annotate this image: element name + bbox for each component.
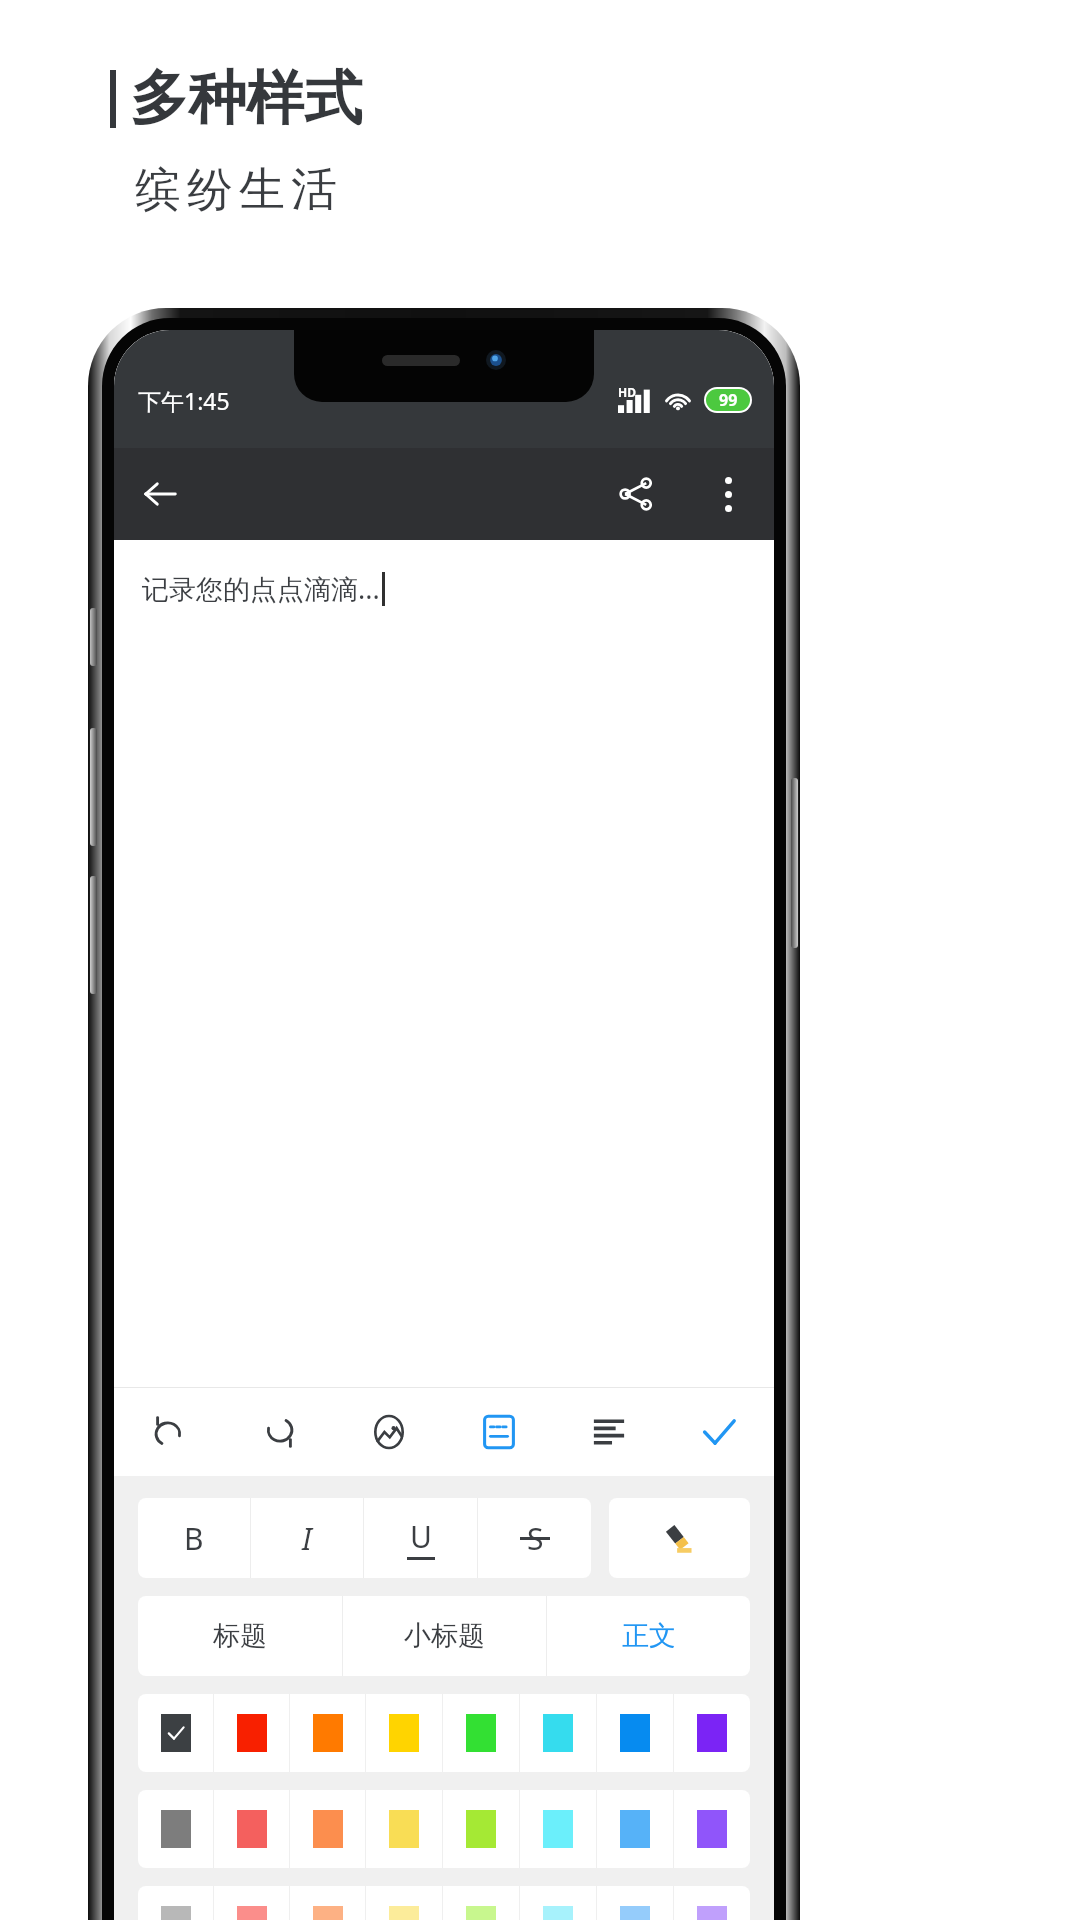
button[interactable]: Color swatch (443, 1694, 519, 1772)
button[interactable]: Back (114, 448, 206, 540)
button[interactable]: Color swatch (214, 1886, 289, 1920)
button[interactable]: Color swatch (290, 1694, 365, 1772)
staticText: 标题 (213, 1619, 267, 1653)
staticText: 多种样式 (130, 62, 362, 135)
button[interactable]: Color swatch (674, 1886, 750, 1920)
staticText: HD (618, 384, 636, 400)
button[interactable]: Redo (224, 1388, 334, 1476)
button[interactable]: 正文 (547, 1596, 750, 1676)
button[interactable]: B (138, 1498, 250, 1578)
staticText: 下午1:45 (138, 385, 230, 416)
button[interactable]: Align (554, 1388, 664, 1476)
button[interactable]: More options (682, 448, 774, 540)
button[interactable]: Insert image (334, 1388, 444, 1476)
button[interactable]: Color swatch (597, 1886, 673, 1920)
button[interactable]: Done (664, 1388, 774, 1476)
button[interactable]: 小标题 (343, 1596, 546, 1676)
button[interactable]: Color swatch (138, 1886, 213, 1920)
button[interactable]: Color swatch (520, 1886, 596, 1920)
staticText: 记录您的点点滴滴... (142, 570, 380, 607)
button[interactable]: Color swatch (290, 1790, 365, 1868)
button[interactable]: Color swatch (674, 1790, 750, 1868)
button[interactable]: 标题 (138, 1596, 342, 1676)
button[interactable]: Color swatch (366, 1694, 442, 1772)
button[interactable]: Color swatch (674, 1694, 750, 1772)
staticText: 缤纷生活 (132, 161, 340, 219)
button[interactable]: U (364, 1498, 477, 1578)
button[interactable]: Color swatch (597, 1694, 673, 1772)
staticText: S (527, 1518, 544, 1559)
button[interactable]: Color swatch (366, 1886, 442, 1920)
staticText: U (410, 1516, 432, 1557)
staticText: 小标题 (404, 1619, 485, 1653)
button[interactable]: Color swatch (138, 1694, 213, 1772)
staticText: B (184, 1518, 204, 1559)
button[interactable]: Color swatch (520, 1694, 596, 1772)
staticText: 99 (719, 389, 738, 411)
button[interactable]: Color swatch (214, 1694, 289, 1772)
button[interactable]: Color swatch (214, 1790, 289, 1868)
button[interactable]: Color swatch (366, 1790, 442, 1868)
button[interactable]: I (251, 1498, 363, 1578)
staticText: I (302, 1518, 312, 1559)
button[interactable]: Color swatch (443, 1886, 519, 1920)
button[interactable]: Text style (444, 1388, 554, 1476)
button[interactable]: Color swatch (290, 1886, 365, 1920)
staticText: 正文 (622, 1619, 676, 1653)
button[interactable]: Highlighter (609, 1498, 750, 1578)
button[interactable]: Color swatch (520, 1790, 596, 1868)
button[interactable]: Share (590, 448, 682, 540)
button[interactable]: Color swatch (443, 1790, 519, 1868)
button[interactable]: Undo (114, 1388, 224, 1476)
button[interactable]: Color swatch (597, 1790, 673, 1868)
button[interactable]: S (478, 1498, 591, 1578)
button[interactable]: Color swatch (138, 1790, 213, 1868)
